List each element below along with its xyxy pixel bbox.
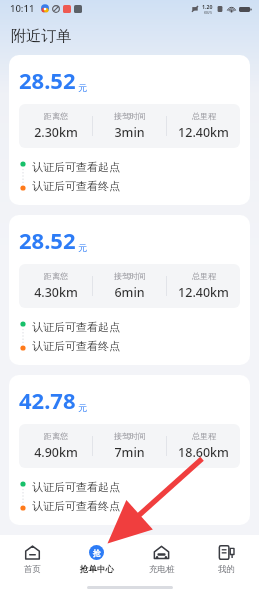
staticText: 2.30km <box>34 124 78 141</box>
button[interactable]: 抢单中心 <box>64 541 129 578</box>
button[interactable]: 首页 <box>0 541 64 578</box>
staticText: 接驾时间 <box>114 271 146 281</box>
staticText: 距离您 <box>44 431 68 441</box>
staticText: 28.52 <box>19 65 76 95</box>
button[interactable]: 我的 <box>194 541 259 578</box>
staticText: 抢 <box>93 548 101 558</box>
staticText: 6min <box>114 284 145 301</box>
staticText: 认证后可查看终点 <box>32 339 120 353</box>
staticText: 42.78 <box>19 385 76 415</box>
staticText: 附近订单 <box>11 27 71 46</box>
staticText: 元 <box>78 82 87 93</box>
staticText: 12.40km <box>178 124 229 141</box>
staticText: 4.90km <box>34 444 78 461</box>
button[interactable]: 28.52 <box>9 215 250 365</box>
staticText: 4.30km <box>34 284 78 301</box>
button[interactable]: 充电桩 <box>129 541 194 578</box>
staticText: 距离您 <box>44 271 68 281</box>
other: 首页 <box>24 544 41 561</box>
staticText: 认证后可查看终点 <box>32 499 120 513</box>
staticText: 认证后可查看起点 <box>32 320 120 334</box>
staticText: 我的 <box>218 564 235 575</box>
staticText: 12.40km <box>178 284 229 301</box>
staticText: KB/S <box>204 10 212 15</box>
staticText: 元 <box>78 402 87 413</box>
staticText: 总里程 <box>192 431 216 441</box>
staticText: 距离您 <box>44 111 68 121</box>
staticText: 接驾时间 <box>114 431 146 441</box>
staticText: 认证后可查看终点 <box>32 179 120 193</box>
other: 我的 <box>218 544 235 561</box>
staticText: 抢单中心 <box>80 564 114 575</box>
staticText: 认证后可查看起点 <box>32 160 120 174</box>
staticText: 元 <box>78 242 87 253</box>
other: 抢单中心 <box>88 544 105 561</box>
staticText: 1.20 <box>202 3 213 10</box>
staticText: 总里程 <box>192 111 216 121</box>
staticText: 3min <box>114 124 145 141</box>
staticText: 18.60km <box>178 444 229 461</box>
staticText: 接驾时间 <box>114 111 146 121</box>
staticText: 首页 <box>24 564 41 575</box>
staticText: 认证后可查看起点 <box>32 480 120 494</box>
button[interactable]: 42.78 <box>9 375 250 525</box>
staticText: 充电桩 <box>149 564 175 575</box>
staticText: 7min <box>114 444 145 461</box>
staticText: 10:11 <box>10 2 35 15</box>
staticText: 总里程 <box>192 271 216 281</box>
other: 充电桩 <box>153 544 170 561</box>
button[interactable]: 28.52 <box>9 55 250 205</box>
staticText: 28.52 <box>19 225 76 255</box>
